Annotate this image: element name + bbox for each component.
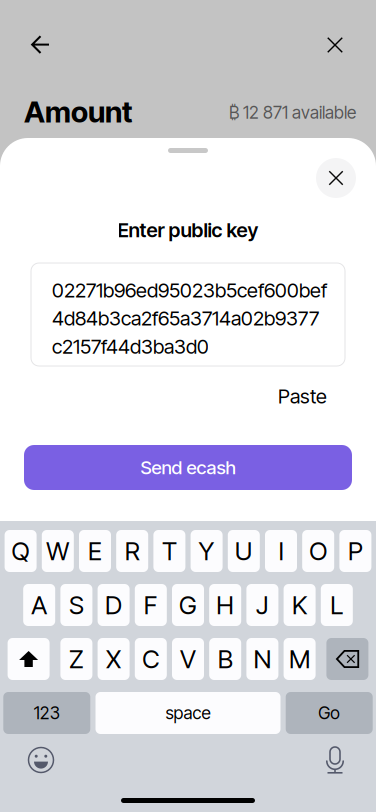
button[interactable]: M xyxy=(284,638,316,680)
button[interactable]: A xyxy=(23,584,55,626)
staticText: 02271b96ed95023b5cef600bef xyxy=(52,278,327,302)
button[interactable]: Q xyxy=(5,530,37,572)
staticText: V xyxy=(180,644,196,674)
button[interactable]: J xyxy=(246,584,278,626)
button[interactable]: E xyxy=(79,530,111,572)
staticText: N xyxy=(253,644,271,674)
staticText: Amount xyxy=(24,94,132,129)
staticText: S xyxy=(69,590,84,620)
staticText: K xyxy=(292,590,307,620)
button[interactable]: D xyxy=(98,584,130,626)
button[interactable]: K xyxy=(284,584,316,626)
button[interactable]: O xyxy=(302,530,334,572)
staticText: A xyxy=(31,590,47,620)
button[interactable]: Emoji keyboard xyxy=(11,742,71,778)
button[interactable]: G xyxy=(172,584,204,626)
staticText: Enter public key xyxy=(117,218,258,242)
staticText: J xyxy=(256,590,269,620)
staticText: E xyxy=(88,536,102,566)
button[interactable]: Close xyxy=(313,23,357,67)
staticText: Z xyxy=(69,644,84,674)
staticText: R xyxy=(125,536,140,566)
staticText: W xyxy=(46,536,69,566)
staticText: I xyxy=(278,536,283,566)
staticText: X xyxy=(106,644,121,674)
staticText: ₿ 12 871 available xyxy=(229,102,356,123)
button[interactable]: Delete xyxy=(326,638,368,680)
staticText: T xyxy=(162,536,177,566)
button[interactable]: V xyxy=(172,638,204,680)
staticText: Go xyxy=(318,702,340,723)
button[interactable]: Dictation xyxy=(305,742,365,778)
button[interactable]: B xyxy=(209,638,241,680)
button[interactable]: F xyxy=(135,584,167,626)
staticText: G xyxy=(179,590,197,620)
button[interactable]: P xyxy=(339,530,371,572)
staticText: O xyxy=(309,536,327,566)
button[interactable]: U xyxy=(228,530,260,572)
button[interactable]: W xyxy=(42,530,74,572)
staticText: Send ecash xyxy=(140,456,235,479)
button[interactable]: Shift xyxy=(8,638,50,680)
staticText: Y xyxy=(199,536,215,566)
button[interactable]: Y xyxy=(191,530,223,572)
staticText: space xyxy=(165,702,210,723)
button[interactable]: R xyxy=(116,530,148,572)
staticText: Q xyxy=(12,536,30,566)
button[interactable]: Dismiss xyxy=(316,158,356,198)
staticText: c2157f44d3ba3d0 xyxy=(52,334,209,359)
staticText: Paste xyxy=(278,384,327,408)
button[interactable]: C xyxy=(135,638,167,680)
button[interactable]: Paste xyxy=(270,378,335,414)
button[interactable]: Back xyxy=(18,23,62,67)
staticText: L xyxy=(330,590,343,620)
button[interactable]: Send ecash xyxy=(24,445,352,490)
button[interactable]: S xyxy=(60,584,92,626)
button[interactable]: L xyxy=(321,584,353,626)
staticText: M xyxy=(289,644,310,674)
button[interactable]: N xyxy=(246,638,278,680)
staticText: P xyxy=(348,536,363,566)
button[interactable]: Z xyxy=(60,638,92,680)
staticText: D xyxy=(105,590,122,620)
button[interactable]: I xyxy=(265,530,297,572)
button[interactable]: H xyxy=(209,584,241,626)
button[interactable]: X xyxy=(98,638,130,680)
staticText: 4d84b3ca2f65a3714a02b9377 xyxy=(52,306,319,330)
button[interactable]: 123 xyxy=(3,692,90,734)
staticText: C xyxy=(142,644,159,674)
staticText: U xyxy=(235,536,253,566)
button[interactable]: space xyxy=(95,692,280,734)
button[interactable]: T xyxy=(153,530,185,572)
staticText: H xyxy=(216,590,234,620)
button[interactable]: Go xyxy=(286,692,373,734)
staticText: F xyxy=(144,590,158,620)
staticText: 123 xyxy=(34,702,60,723)
staticText: B xyxy=(218,644,233,674)
